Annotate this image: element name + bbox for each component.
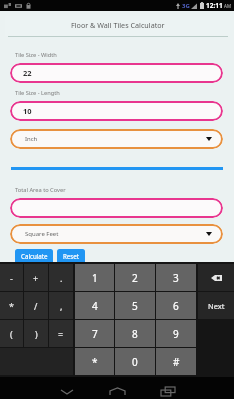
staticText: Tile Size - Width <box>15 51 57 59</box>
staticText: Next <box>208 301 225 311</box>
button[interactable]: Backspace <box>198 264 234 291</box>
staticText: - <box>10 272 13 284</box>
button[interactable]: 5 <box>115 292 155 319</box>
staticText: 3G <box>182 2 190 10</box>
button[interactable]: * <box>75 348 114 375</box>
staticText: AM <box>224 3 231 9</box>
button[interactable]: # <box>156 348 196 375</box>
button[interactable]: 0 <box>115 348 155 375</box>
staticText: 3 <box>173 271 179 285</box>
button[interactable]: Calculate <box>15 249 53 265</box>
staticText: + <box>33 272 39 284</box>
staticText: 2 <box>132 271 138 285</box>
button[interactable]: , <box>49 292 73 319</box>
button[interactable]: 4 <box>75 292 114 319</box>
staticText: 6 <box>173 299 179 313</box>
button[interactable]: * <box>0 292 23 319</box>
button[interactable]: 1 <box>75 264 114 291</box>
button[interactable]: Next <box>198 292 234 319</box>
button[interactable]: 7 <box>75 320 114 347</box>
staticText: . <box>60 272 63 284</box>
staticText: = <box>58 328 64 340</box>
button[interactable]: 3 <box>156 264 196 291</box>
button[interactable]: Square Feet <box>10 224 223 244</box>
staticText: Floor & Wall Tiles Calculator <box>71 20 165 30</box>
button[interactable]: + <box>24 264 48 291</box>
button[interactable]: - <box>0 264 23 291</box>
button[interactable]: 8 <box>115 320 155 347</box>
staticText: Calculate <box>21 252 48 260</box>
staticText: 7 <box>92 327 98 341</box>
button[interactable]: Inch <box>10 129 223 149</box>
staticText: / <box>34 300 38 312</box>
staticText: ) <box>35 328 38 340</box>
staticText: 10 <box>23 106 32 116</box>
staticText: 9 <box>173 327 179 341</box>
staticText: * <box>9 300 14 312</box>
button[interactable]: = <box>49 320 73 347</box>
button[interactable]: / <box>24 292 48 319</box>
staticText: # <box>173 355 180 369</box>
staticText: Tile Size - Length <box>15 89 60 97</box>
button[interactable]: 10 <box>10 101 223 121</box>
button[interactable]: 9 <box>156 320 196 347</box>
staticText: 4 <box>92 299 98 313</box>
staticText: Total Area to Cover <box>15 186 66 194</box>
staticText: 5 <box>132 299 138 313</box>
staticText: 8 <box>132 327 138 341</box>
button[interactable]: Reset <box>57 249 85 265</box>
button[interactable]: Home <box>97 377 137 399</box>
button[interactable]: 22 <box>10 63 223 83</box>
button[interactable]: ) <box>24 320 48 347</box>
button[interactable]: ( <box>0 320 23 347</box>
staticText: , <box>60 300 63 312</box>
staticText: 0 <box>132 355 138 369</box>
staticText: 1 <box>92 271 98 285</box>
button[interactable]: Recent apps <box>148 377 188 399</box>
staticText: 22 <box>23 68 32 78</box>
staticText: Inch <box>25 135 38 143</box>
button[interactable]: 6 <box>156 292 196 319</box>
button[interactable]: 2 <box>115 264 155 291</box>
staticText: Reset <box>63 252 80 260</box>
other: Backspace <box>211 275 222 281</box>
button[interactable] <box>10 198 223 218</box>
staticText: * <box>92 355 98 369</box>
staticText: Square Feet <box>25 230 59 238</box>
staticText: ( <box>10 328 13 340</box>
staticText: 12:11 <box>206 1 223 10</box>
button[interactable]: . <box>49 264 73 291</box>
button[interactable]: Back <box>47 377 87 399</box>
